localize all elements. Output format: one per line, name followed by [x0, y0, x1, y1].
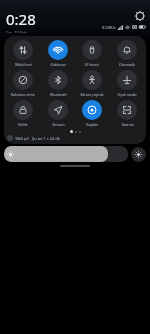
- button[interactable]: Konum: [41, 99, 75, 128]
- staticText: %84 pil: [15, 136, 29, 141]
- button[interactable]: Ekranı yayınla: [75, 69, 109, 98]
- button[interactable]: Kaydet: [75, 99, 109, 128]
- staticText: Mobil veri: [15, 62, 32, 67]
- button[interactable]: El feneri: [75, 39, 109, 68]
- button[interactable]: Bluetooth: [41, 69, 75, 98]
- staticText: Çrş, 10 Şub: [6, 30, 27, 33]
- staticText: Kilitle: [18, 122, 28, 127]
- button[interactable]: Brightness: [4, 146, 128, 162]
- button[interactable]: Otomatik: [110, 39, 144, 68]
- staticText: Kablosuz: [50, 62, 66, 67]
- staticText: El feneri: [85, 62, 99, 67]
- button[interactable]: Kilitle: [6, 99, 40, 128]
- staticText: 0.00K/s: [102, 25, 116, 30]
- staticText: Kaydet: [86, 122, 98, 127]
- staticText: Otomatik: [119, 62, 135, 67]
- button[interactable]: Auto brightness: [131, 147, 146, 162]
- button[interactable]: Settings: [134, 10, 145, 21]
- staticText: Tarama: [121, 122, 134, 127]
- staticText: 00: [132, 24, 138, 30]
- staticText: Ekranı yayınla: [80, 92, 104, 97]
- button[interactable]: Battery: [7, 135, 13, 141]
- staticText: Bluetooth: [50, 92, 67, 97]
- staticText: Şu an 1 s 24 dk: [32, 136, 60, 141]
- button[interactable]: Uçak modu: [110, 69, 144, 98]
- button[interactable]: Tarama: [110, 99, 144, 128]
- button[interactable]: Rahatsız etme: [6, 69, 40, 98]
- staticText: 0:28: [6, 9, 36, 29]
- button[interactable]: Kablosuz: [41, 39, 75, 68]
- staticText: Konum: [52, 122, 65, 127]
- staticText: Rahatsız etme: [11, 92, 35, 97]
- button[interactable]: Mobil veri: [6, 39, 40, 68]
- staticText: Uçak modu: [117, 92, 137, 97]
